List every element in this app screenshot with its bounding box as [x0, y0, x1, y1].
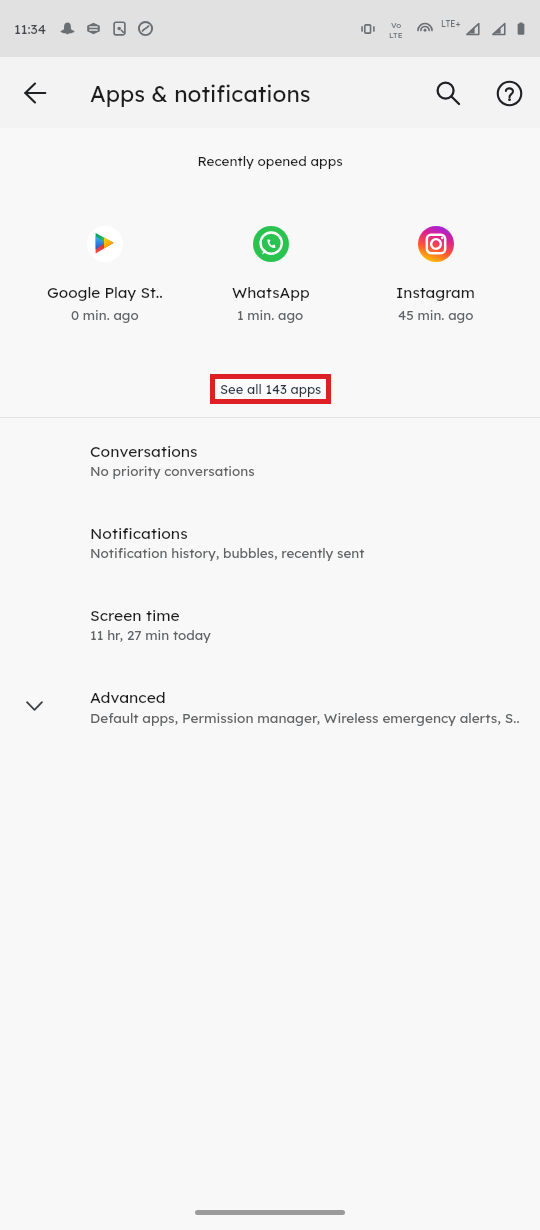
staticText: LTE	[389, 30, 403, 40]
staticText: Apps & notifications	[90, 79, 311, 107]
button[interactable]: Back	[11, 69, 59, 117]
staticText: 11 hr, 27 min today	[90, 627, 211, 644]
staticText: Notification history, bubbles, recently …	[90, 545, 365, 562]
staticText: Vo	[391, 20, 402, 30]
staticText: No priority conversations	[90, 463, 255, 480]
button[interactable]: WhatsApp	[188, 226, 353, 324]
staticText: See all 143 apps	[220, 381, 322, 397]
staticText: Notifications	[90, 523, 188, 543]
staticText: Screen time	[90, 605, 180, 625]
staticText: WhatsApp	[232, 283, 310, 302]
button[interactable]: Advanced	[0, 664, 540, 746]
staticText: Instagram	[396, 283, 475, 302]
staticText: LTE+	[441, 18, 461, 29]
button[interactable]: Notifications	[0, 500, 540, 582]
staticText: Advanced	[90, 687, 166, 707]
staticText: 11:34	[14, 20, 47, 37]
staticText: Conversations	[90, 441, 198, 461]
staticText: 45 min. ago	[398, 307, 474, 324]
staticText: Recently opened apps	[0, 152, 540, 169]
button[interactable]: See all 143 apps	[215, 379, 326, 399]
button[interactable]: Help	[485, 69, 533, 117]
button[interactable]: Conversations	[0, 418, 540, 500]
staticText: 1 min. ago	[237, 307, 304, 324]
staticText: 0 min. ago	[71, 307, 139, 324]
button[interactable]: Screen time	[0, 582, 540, 664]
staticText: Default apps, Permission manager, Wirele…	[90, 709, 520, 726]
staticText: Google Play St..	[47, 283, 163, 302]
button[interactable]: Search	[424, 69, 472, 117]
button[interactable]: Instagram	[353, 226, 518, 324]
button[interactable]: Google Play St..	[22, 226, 188, 324]
